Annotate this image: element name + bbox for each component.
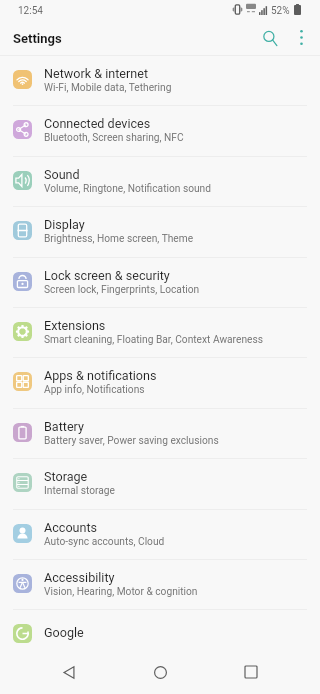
staticText: Sound bbox=[44, 167, 80, 182]
button[interactable]: Extensions bbox=[0, 308, 320, 357]
staticText: Lock screen & security bbox=[44, 268, 170, 283]
staticText: Battery saver, Power saving exclusions bbox=[44, 435, 219, 447]
button[interactable]: Lock screen & security bbox=[0, 258, 320, 307]
staticText: Network & internet bbox=[44, 66, 148, 81]
staticText: Accessibility bbox=[44, 570, 115, 585]
staticText: Screen lock, Fingerprints, Location bbox=[44, 284, 200, 296]
button[interactable]: Search bbox=[254, 21, 286, 54]
button[interactable]: Apps & notifications bbox=[0, 358, 320, 407]
staticText: 12:54 bbox=[18, 5, 43, 17]
button[interactable]: Accessibility bbox=[0, 560, 320, 609]
staticText: Volume, Ringtone, Notification sound bbox=[44, 183, 211, 195]
staticText: Storage bbox=[44, 469, 88, 484]
button[interactable]: Battery bbox=[0, 409, 320, 458]
staticText: Smart cleaning, Floating Bar, Context Aw… bbox=[44, 334, 263, 346]
button[interactable]: Connected devices bbox=[0, 106, 320, 155]
staticText: Apps & notifications bbox=[44, 368, 157, 383]
staticText: Bluetooth, Screen sharing, NFC bbox=[44, 132, 184, 144]
button[interactable]: Back bbox=[47, 650, 91, 694]
staticText: Battery bbox=[44, 419, 84, 434]
button[interactable]: Display bbox=[0, 207, 320, 256]
staticText: App info, Notifications bbox=[44, 384, 145, 396]
button[interactable]: Accounts bbox=[0, 510, 320, 559]
button[interactable]: Sound bbox=[0, 157, 320, 206]
button[interactable]: Google bbox=[0, 610, 320, 649]
staticText: Auto-sync accounts, Cloud bbox=[44, 536, 165, 548]
staticText: 52% bbox=[271, 5, 290, 17]
button[interactable]: Network & internet bbox=[0, 56, 320, 105]
button[interactable]: More options bbox=[286, 21, 316, 54]
button[interactable]: Recents bbox=[229, 650, 273, 694]
staticText: Brightness, Home screen, Theme bbox=[44, 233, 194, 245]
staticText: Display bbox=[44, 217, 85, 232]
button[interactable]: Storage bbox=[0, 459, 320, 508]
staticText: Connected devices bbox=[44, 116, 151, 131]
staticText: Settings bbox=[13, 31, 62, 46]
staticText: Google bbox=[44, 625, 84, 640]
staticText: Accounts bbox=[44, 520, 98, 535]
staticText: Internal storage bbox=[44, 485, 115, 497]
staticText: Extensions bbox=[44, 318, 106, 333]
staticText: Wi-Fi, Mobile data, Tethering bbox=[44, 82, 172, 94]
staticText: Vision, Hearing, Motor & cognition bbox=[44, 586, 198, 598]
button[interactable]: Home bbox=[138, 650, 182, 694]
